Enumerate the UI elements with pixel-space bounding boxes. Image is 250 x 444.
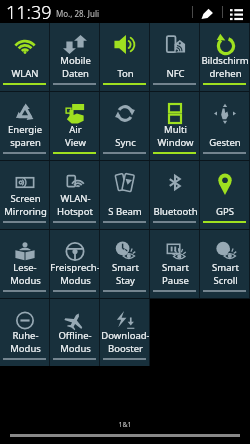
- staticText: Energie: [8, 123, 42, 136]
- button[interactable]: S Beam: [100, 161, 150, 229]
- staticText: Freisprech-: [50, 261, 100, 274]
- staticText: Screen: [10, 192, 41, 205]
- staticText: Modus: [10, 342, 41, 355]
- button[interactable]: WLAN-: [50, 161, 100, 229]
- staticText: Offline-: [58, 329, 92, 342]
- button[interactable]: Mobile: [50, 23, 100, 91]
- button[interactable]: Edit: [201, 7, 214, 20]
- button[interactable]: Smart: [150, 230, 200, 298]
- staticText: Download-: [101, 329, 150, 342]
- button[interactable]: Smart: [100, 230, 150, 298]
- button[interactable]: Lese-: [0, 230, 50, 298]
- staticText: S Beam: [108, 205, 142, 218]
- button[interactable]: Ton: [100, 23, 150, 91]
- staticText: Bildschirm: [201, 54, 249, 67]
- staticText: WLAN: [11, 67, 39, 80]
- staticText: Scroll: [213, 274, 238, 287]
- staticText: Smart: [162, 261, 189, 274]
- staticText: sparen: [10, 136, 41, 149]
- button[interactable]: Offline-: [50, 299, 100, 366]
- staticText: Modus: [60, 342, 91, 355]
- staticText: Multi: [164, 123, 187, 136]
- button[interactable]: Bildschirm: [200, 23, 250, 91]
- button[interactable]: NFC: [150, 23, 200, 91]
- button[interactable]: Ruhe-: [0, 299, 50, 366]
- staticText: View: [65, 136, 86, 149]
- button[interactable]: Energie: [0, 92, 50, 160]
- staticText: Gesten: [209, 136, 241, 149]
- staticText: Stay: [116, 274, 135, 287]
- staticText: drehen: [209, 67, 242, 80]
- button[interactable]: Freisprech-: [50, 230, 100, 298]
- staticText: Booster: [108, 342, 143, 355]
- button[interactable]: Air: [50, 92, 100, 160]
- staticText: Air: [69, 123, 82, 136]
- staticText: 1&1: [0, 420, 250, 430]
- staticText: Pause: [162, 274, 189, 287]
- staticText: Bluetooth: [153, 205, 198, 218]
- staticText: Mirroring: [4, 205, 47, 218]
- button[interactable]: Download-: [100, 299, 150, 366]
- staticText: Smart: [212, 261, 239, 274]
- staticText: NFC: [166, 67, 185, 80]
- staticText: Daten: [62, 67, 89, 80]
- staticText: Modus: [60, 274, 91, 287]
- button[interactable]: Bluetooth: [150, 161, 200, 229]
- button[interactable]: Multi: [150, 92, 200, 160]
- staticText: 11:39: [6, 0, 52, 21]
- button[interactable]: Notifications list: [230, 8, 243, 19]
- staticText: Sync: [115, 136, 136, 149]
- staticText: Smart: [112, 261, 139, 274]
- staticText: WLAN-: [60, 192, 91, 205]
- button[interactable]: Screen: [0, 161, 50, 229]
- button[interactable]: Gesten: [200, 92, 250, 160]
- staticText: Hotspot: [57, 205, 93, 218]
- staticText: Ruhe-: [12, 329, 39, 342]
- button[interactable]: Sync: [100, 92, 150, 160]
- staticText: Mobile: [60, 54, 91, 67]
- staticText: Ton: [117, 67, 134, 80]
- staticText: Lese-: [13, 261, 37, 274]
- button[interactable]: WLAN: [0, 23, 50, 91]
- button[interactable]: Smart: [200, 230, 250, 298]
- staticText: GPS: [216, 205, 234, 218]
- staticText: Modus: [10, 274, 41, 287]
- staticText: Mo., 28. Juli: [56, 8, 100, 19]
- button[interactable]: GPS: [200, 161, 250, 229]
- staticText: Window: [157, 136, 194, 149]
